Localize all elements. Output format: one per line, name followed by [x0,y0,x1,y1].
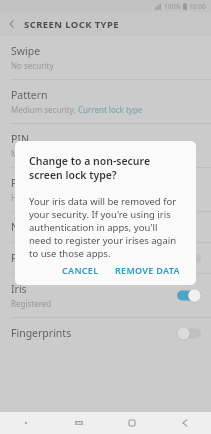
button[interactable]: Pattern [0,80,211,123]
button[interactable]: Back [158,412,211,434]
button[interactable]: PIN [0,124,211,167]
button[interactable]: Fingerprints [0,318,211,348]
staticText: No security [11,60,54,71]
staticText: Registered [11,298,52,309]
staticText: 10:00 [189,2,206,11]
button[interactable]: Navigate up [0,12,24,36]
staticText: Your iris data will be removed for your … [29,195,182,260]
staticText: 100% [164,2,181,11]
button[interactable]: Off [177,252,201,265]
staticText: High security [11,192,61,203]
staticText: Face [11,251,34,265]
button[interactable]: None [0,212,211,242]
staticText: Swipe [11,44,41,58]
button[interactable]: More options [0,412,52,434]
button[interactable]: Recent apps [52,412,105,434]
button[interactable]: CANCEL [56,260,105,278]
staticText: Password [11,176,59,190]
staticText: Change to a non-secure screen lock type? [29,154,180,182]
button[interactable]: Off [177,327,201,340]
staticText: CANCEL [62,264,99,274]
button[interactable]: Password [0,168,211,211]
button[interactable]: Face [0,243,211,273]
staticText: REMOVE DATA [115,264,180,274]
staticText: SCREEN LOCK TYPE [24,18,119,31]
staticText: Medium to high security [11,148,103,159]
staticText: Current lock type [78,104,143,115]
staticText: Fingerprints [11,326,72,340]
button[interactable]: Home [105,412,158,434]
button[interactable]: On [177,289,201,302]
staticText: None [11,220,38,234]
button[interactable]: Swipe [0,36,211,79]
staticText: Pattern [11,88,48,102]
staticText: Iris [11,282,27,296]
staticText: Medium security, [11,104,78,115]
button[interactable]: Iris [0,274,211,317]
button[interactable]: REMOVE DATA [109,260,186,278]
staticText: PIN [11,132,29,146]
